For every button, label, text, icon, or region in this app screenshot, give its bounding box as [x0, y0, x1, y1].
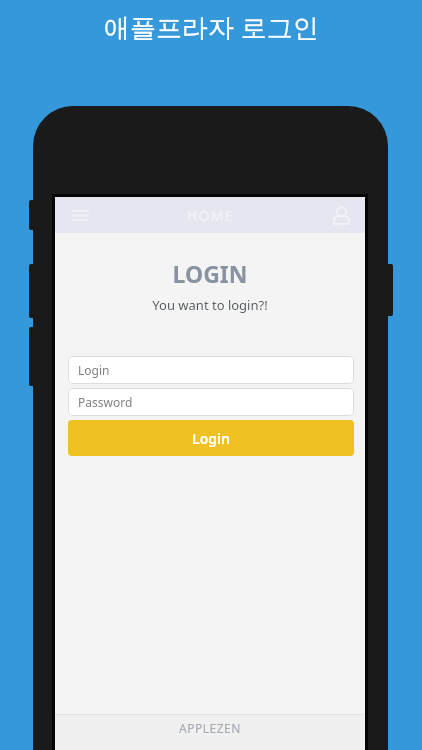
button[interactable]: Password	[68, 388, 354, 416]
button[interactable]: Login	[68, 356, 354, 384]
staticText: 애플프라자 로그인	[104, 9, 319, 45]
staticText: LOGIN	[55, 258, 365, 289]
button[interactable]: Menu	[67, 202, 93, 228]
button[interactable]: Account	[328, 202, 354, 228]
staticText: HOME	[187, 206, 234, 225]
button[interactable]: Login	[68, 420, 354, 456]
staticText: APPLEZEN	[179, 720, 241, 736]
staticText: Password	[78, 394, 133, 410]
staticText: You want to login?!	[55, 296, 365, 314]
staticText: Login	[192, 429, 230, 448]
staticText: Login	[78, 362, 110, 378]
